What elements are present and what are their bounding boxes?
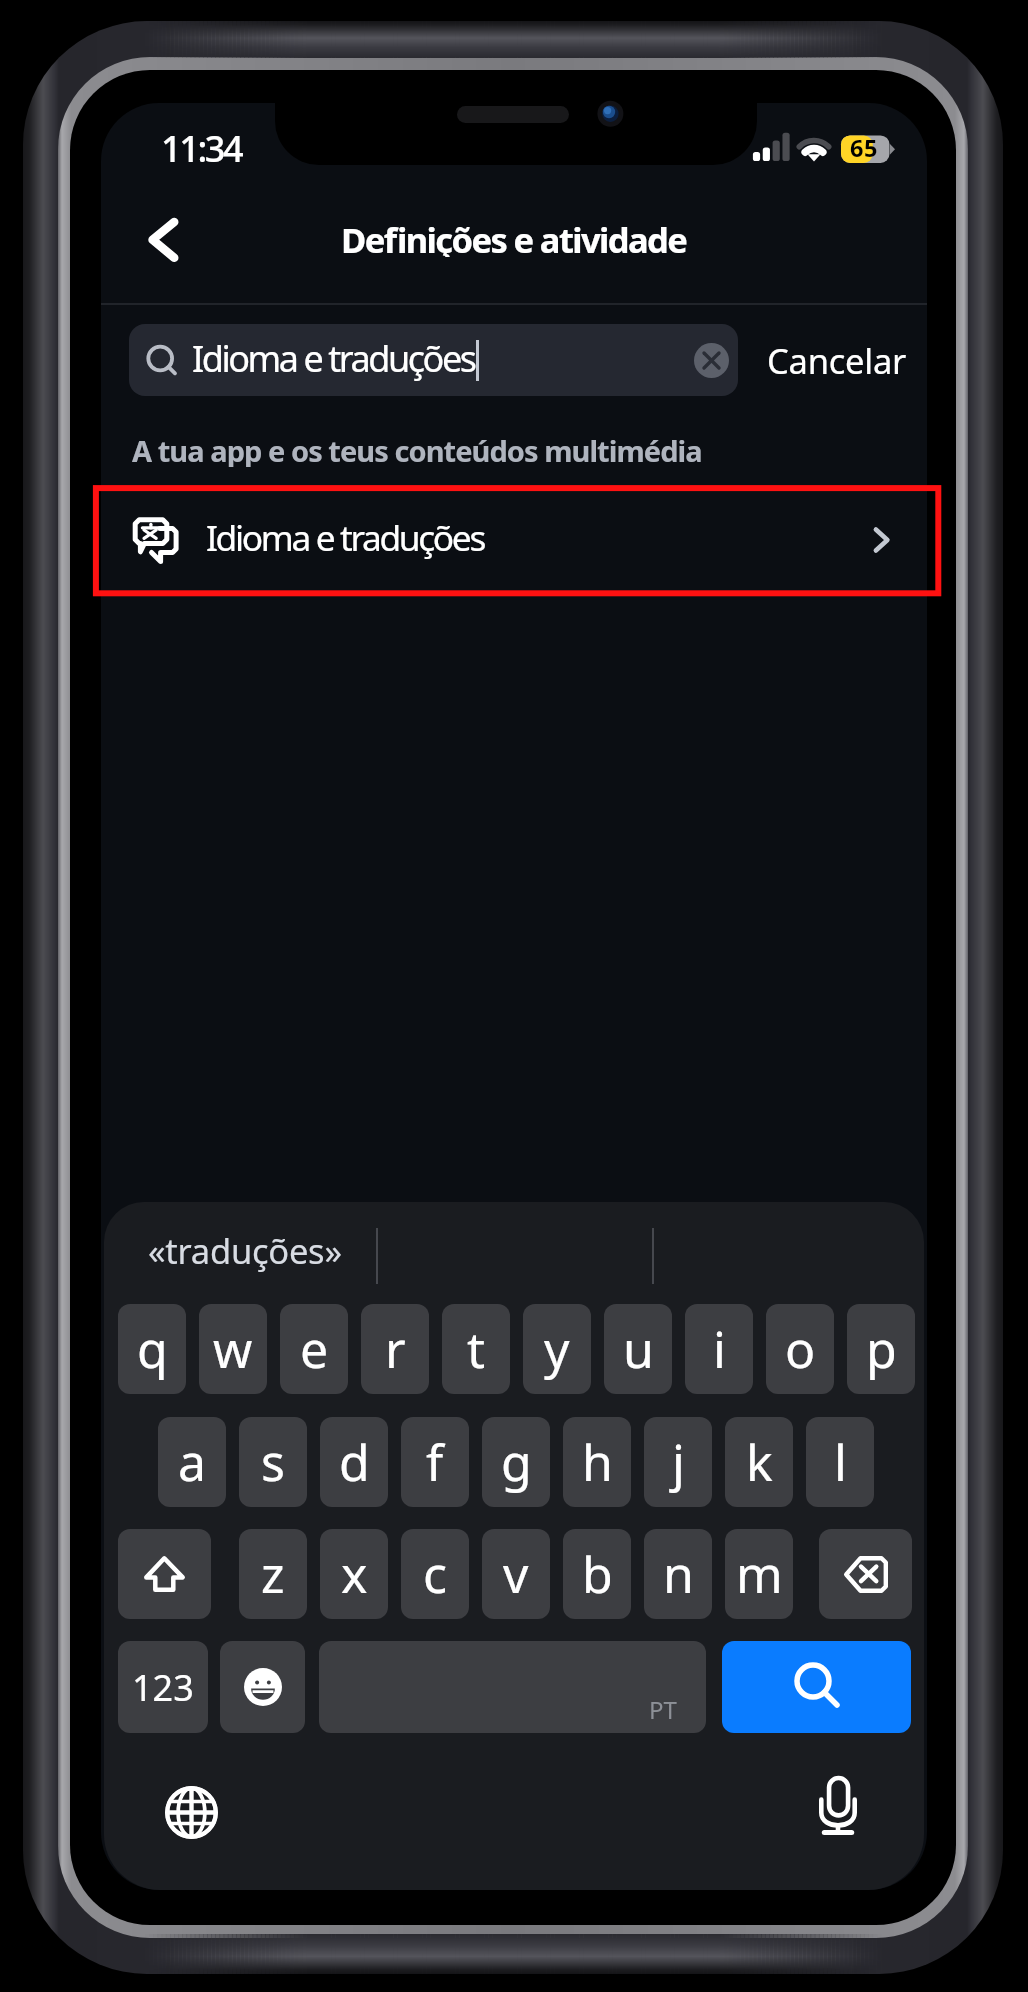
staticText: e (300, 1315, 329, 1383)
staticText: 11:34 (161, 124, 242, 173)
staticText: a (178, 1428, 207, 1496)
staticText: d (339, 1428, 370, 1496)
staticText: x (341, 1540, 368, 1608)
button[interactable]: Backspace (819, 1529, 912, 1619)
button[interactable]: b (563, 1529, 631, 1619)
staticText: s (261, 1428, 285, 1496)
button[interactable]: Idioma e traduções (129, 324, 738, 396)
button[interactable]: Idioma e traduções (101, 489, 927, 591)
staticText: 123 (132, 1663, 194, 1712)
button[interactable]: t (442, 1304, 510, 1394)
staticText: Idioma e traduções (206, 513, 484, 561)
staticText: r (385, 1315, 406, 1383)
button[interactable]: s (239, 1417, 307, 1507)
button[interactable]: Dictation (803, 1771, 873, 1841)
staticText: w (213, 1315, 253, 1383)
button[interactable]: x (320, 1529, 388, 1619)
staticText: f (426, 1428, 444, 1496)
button[interactable]: o (766, 1304, 834, 1394)
staticText: l (834, 1428, 847, 1496)
button[interactable]: c (401, 1529, 469, 1619)
button[interactable]: 123 (118, 1641, 208, 1733)
button[interactable]: Emoji (220, 1641, 305, 1733)
staticText: 65 (850, 132, 879, 164)
staticText: PT (649, 1693, 677, 1726)
button[interactable]: y (523, 1304, 591, 1394)
staticText: n (663, 1540, 694, 1608)
button[interactable]: j (644, 1417, 712, 1507)
staticText: Definições e atividade (341, 216, 687, 257)
button[interactable]: l (806, 1417, 874, 1507)
button[interactable]: Search (722, 1641, 911, 1733)
button[interactable]: m (725, 1529, 793, 1619)
button[interactable]: u (604, 1304, 672, 1394)
staticText: c (423, 1540, 447, 1608)
staticText: u (623, 1315, 654, 1383)
staticText: p (866, 1315, 897, 1383)
button[interactable]: a (158, 1417, 226, 1507)
staticText: Idioma e traduções (192, 334, 475, 383)
button[interactable]: Change keyboard (156, 1777, 226, 1847)
staticText: t (467, 1315, 486, 1383)
button[interactable]: Shift (118, 1529, 211, 1619)
staticText: v (503, 1540, 529, 1608)
staticText: y (544, 1315, 570, 1383)
button[interactable]: v (482, 1529, 550, 1619)
button[interactable]: r (361, 1304, 429, 1394)
button[interactable]: g (482, 1417, 550, 1507)
staticText: h (582, 1428, 613, 1496)
staticText: A tua app e os teus conteúdos multimédia (132, 431, 702, 467)
staticText: o (785, 1315, 816, 1383)
staticText: i (713, 1315, 726, 1383)
button[interactable]: Cancelar (767, 324, 927, 396)
button[interactable]: Back (125, 194, 207, 286)
staticText: q (137, 1315, 168, 1383)
button[interactable]: Clear text (694, 343, 729, 378)
staticText: m (736, 1540, 783, 1608)
button[interactable]: q (118, 1304, 186, 1394)
staticText: Cancelar (767, 337, 907, 384)
button[interactable]: e (280, 1304, 348, 1394)
button[interactable]: Space (319, 1641, 706, 1733)
staticText: z (261, 1540, 285, 1608)
staticText: g (501, 1428, 532, 1496)
button[interactable]: i (685, 1304, 753, 1394)
button[interactable]: d (320, 1417, 388, 1507)
button[interactable]: h (563, 1417, 631, 1507)
button[interactable]: z (239, 1529, 307, 1619)
button[interactable]: p (847, 1304, 915, 1394)
button[interactable]: k (725, 1417, 793, 1507)
staticText: b (582, 1540, 613, 1608)
staticText: «traduções» (148, 1227, 342, 1274)
button[interactable]: f (401, 1417, 469, 1507)
staticText: j (672, 1428, 685, 1496)
button[interactable]: w (199, 1304, 267, 1394)
button[interactable]: n (644, 1529, 712, 1619)
staticText: k (746, 1428, 773, 1496)
